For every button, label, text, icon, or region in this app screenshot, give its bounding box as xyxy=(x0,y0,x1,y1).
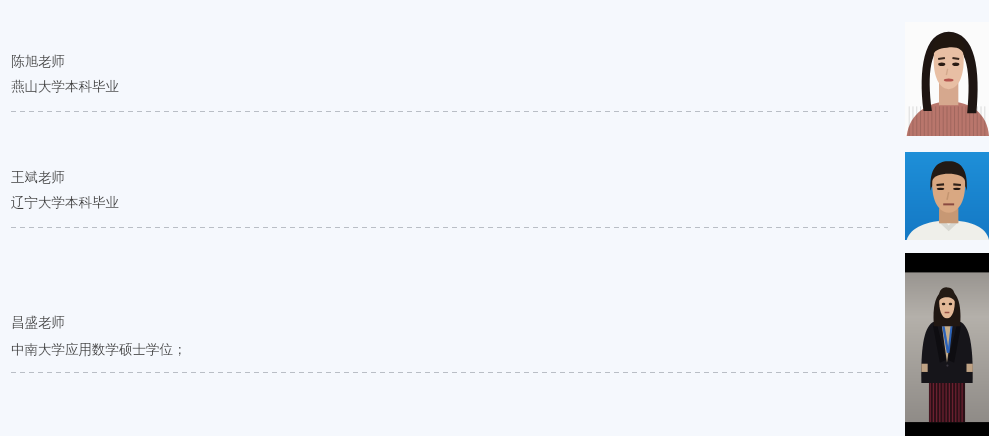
button[interactable]: 王斌老师 xyxy=(11,169,65,186)
button[interactable]: 陈旭老师照片 xyxy=(905,22,989,136)
button[interactable]: 昌盛老师 xyxy=(11,314,65,331)
button[interactable]: 中南大学应用数学硕士学位； xyxy=(11,341,187,358)
button[interactable]: 辽宁大学本科毕业 xyxy=(11,194,119,211)
button[interactable]: 昌盛老师照片 xyxy=(905,253,989,436)
button[interactable]: 陈旭老师 xyxy=(11,53,65,70)
button[interactable]: 燕山大学本科毕业 xyxy=(11,78,119,95)
button[interactable]: 王斌老师照片 xyxy=(905,152,989,240)
